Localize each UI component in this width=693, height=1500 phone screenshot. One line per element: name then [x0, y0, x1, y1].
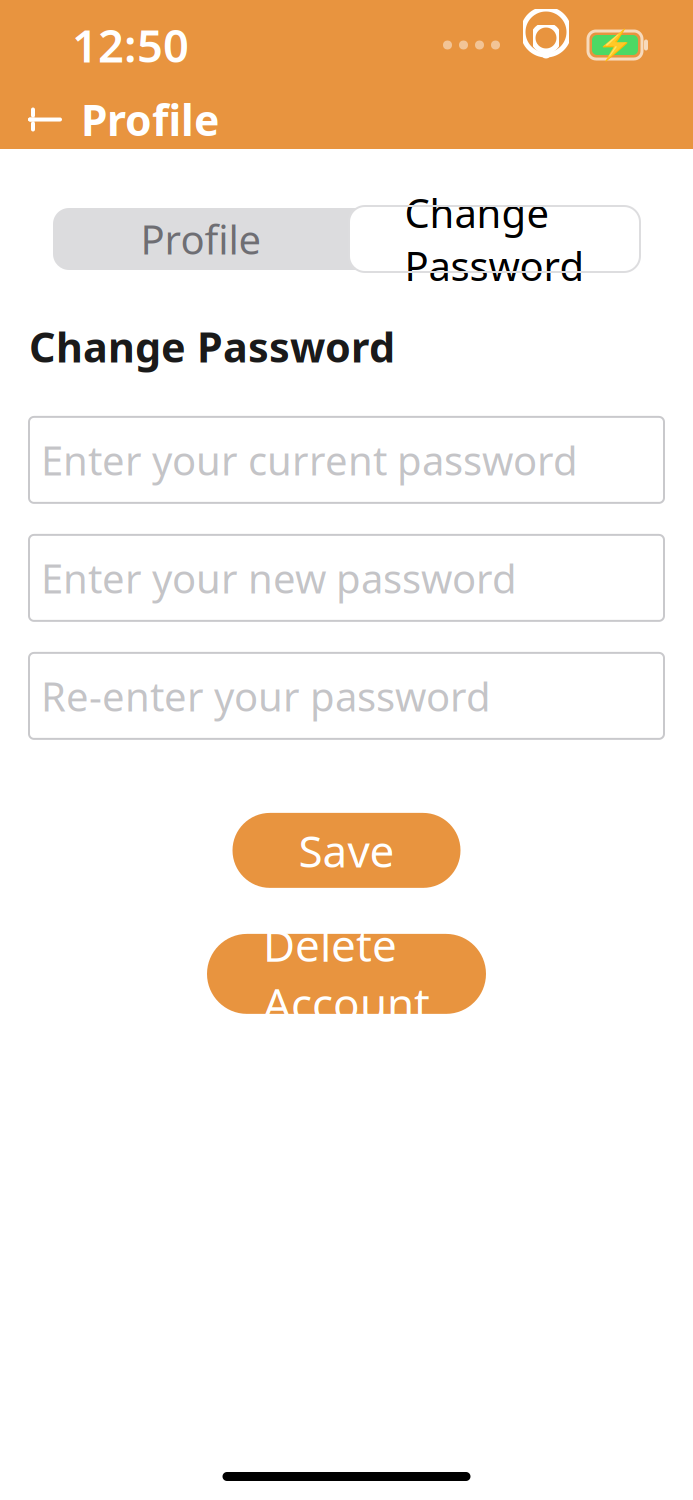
staticText: Delete Account	[263, 915, 430, 1032]
staticText: Save	[298, 821, 394, 880]
staticText: Profile	[81, 91, 219, 148]
staticText: Re-enter your password	[41, 669, 491, 722]
staticText: Enter your new password	[41, 551, 517, 604]
staticText: 12:50	[72, 15, 189, 75]
staticText: Change Password	[29, 319, 395, 374]
button[interactable]: Profile	[53, 208, 349, 270]
staticText: ⚡	[596, 28, 633, 62]
button[interactable]: Save	[232, 813, 460, 888]
button[interactable]: Back to Profile	[0, 83, 219, 156]
staticText: Profile	[140, 212, 261, 265]
staticText: Change Password	[404, 186, 584, 292]
button[interactable]: Change Password	[349, 206, 640, 272]
staticText: Enter your current password	[41, 433, 578, 486]
button[interactable]: Delete Account	[207, 934, 486, 1014]
